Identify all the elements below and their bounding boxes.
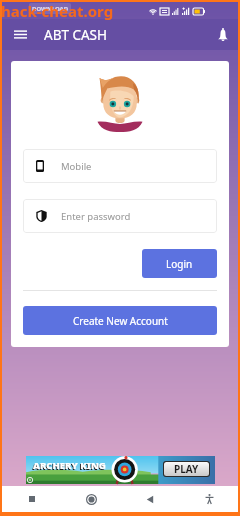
button[interactable]: Back	[139, 488, 161, 510]
button[interactable]: Mobile	[23, 149, 217, 183]
button[interactable]: Menu	[14, 28, 27, 41]
button[interactable]: Accessibility	[198, 488, 220, 510]
button[interactable]: Login	[142, 249, 217, 278]
staticText: Enter password	[61, 210, 131, 223]
button[interactable]: Home	[80, 488, 102, 510]
button[interactable]: Notifications	[218, 28, 228, 42]
staticText: ARCHERY KING	[32, 460, 105, 473]
button[interactable]: Recents	[21, 488, 43, 510]
staticText: Create New Account	[73, 314, 168, 328]
staticText: DOWNLOAD	[32, 5, 69, 13]
button[interactable]: Create New Account	[23, 306, 217, 335]
button[interactable]: Archery King advertisement	[26, 456, 215, 484]
button[interactable]: Enter password	[23, 199, 217, 233]
button[interactable]: PLAY	[164, 462, 209, 476]
staticText: hack-cheat.org	[1, 1, 114, 21]
staticText: PLAY	[174, 462, 199, 476]
staticText: ARCHERY KING	[33, 459, 106, 472]
staticText: Login	[166, 257, 193, 271]
staticText: ABT CASH	[44, 26, 107, 44]
staticText: Mobile	[61, 160, 92, 173]
